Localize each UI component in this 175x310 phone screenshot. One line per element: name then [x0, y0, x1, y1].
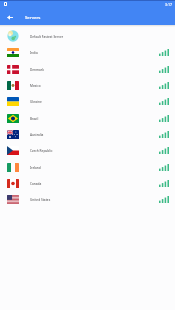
- button[interactable]: Canada: [0, 175, 175, 191]
- staticText: 3:17: [165, 2, 173, 7]
- button[interactable]: Back: [4, 11, 16, 23]
- staticText: Default Fastest Server: [30, 35, 64, 39]
- button[interactable]: India: [0, 44, 175, 60]
- staticText: Ireland: [30, 166, 41, 170]
- staticText: Denmark: [30, 68, 44, 72]
- staticText: Czech Republic: [30, 149, 53, 153]
- button[interactable]: Australia: [0, 126, 175, 142]
- staticText: Australia: [30, 133, 44, 137]
- staticText: Mexico: [30, 84, 41, 88]
- button[interactable]: Ireland: [0, 159, 175, 175]
- staticText: Canada: [30, 182, 42, 186]
- button[interactable]: Mexico: [0, 77, 175, 93]
- staticText: Servers: [25, 14, 41, 20]
- staticText: United States: [30, 198, 51, 202]
- button[interactable]: United States: [0, 191, 175, 207]
- button[interactable]: Czech Republic: [0, 142, 175, 158]
- staticText: Ukraine: [30, 100, 42, 104]
- staticText: India: [30, 51, 38, 55]
- button[interactable]: Denmark: [0, 61, 175, 77]
- staticText: Brazil: [30, 117, 39, 121]
- button[interactable]: Brazil: [0, 110, 175, 126]
- button[interactable]: Default Fastest Server: [0, 28, 175, 44]
- button[interactable]: Ukraine: [0, 93, 175, 109]
